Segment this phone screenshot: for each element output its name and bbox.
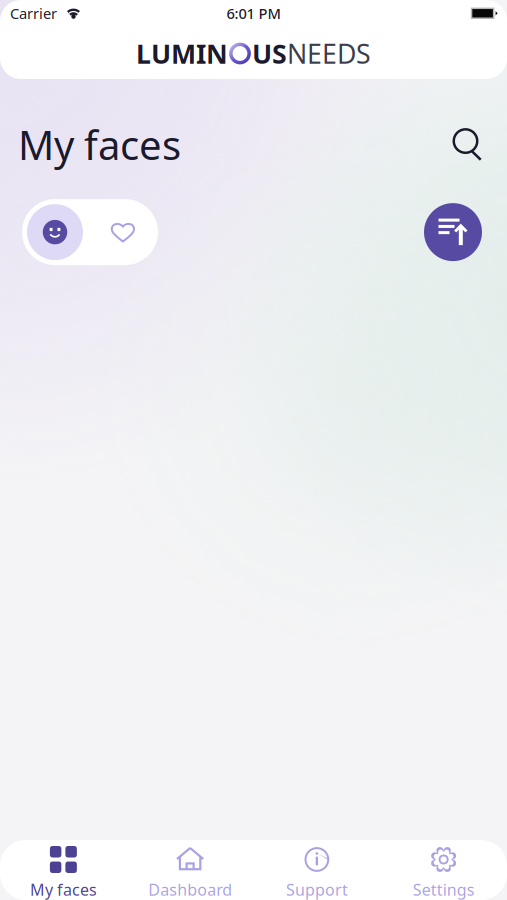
button[interactable]: Settings bbox=[380, 840, 507, 900]
staticText: NEEDS bbox=[287, 36, 371, 71]
staticText: Carrier bbox=[10, 4, 57, 23]
staticText: Settings bbox=[413, 879, 475, 900]
staticText: My faces bbox=[18, 118, 181, 171]
button[interactable]: All faces bbox=[22, 199, 88, 265]
button[interactable]: Sort bbox=[424, 203, 482, 261]
button[interactable]: Favourites bbox=[88, 199, 158, 265]
staticText: LUMIN bbox=[136, 36, 228, 71]
staticText: Support bbox=[286, 879, 348, 900]
button[interactable]: My faces bbox=[0, 840, 127, 900]
button[interactable]: Search bbox=[446, 122, 492, 168]
staticText: US bbox=[252, 36, 287, 71]
button[interactable]: Dashboard bbox=[127, 840, 254, 900]
staticText: My faces bbox=[30, 879, 97, 900]
staticText: Dashboard bbox=[148, 879, 232, 900]
button[interactable]: Support bbox=[253, 840, 380, 900]
staticText: 6:01 PM bbox=[226, 4, 280, 23]
